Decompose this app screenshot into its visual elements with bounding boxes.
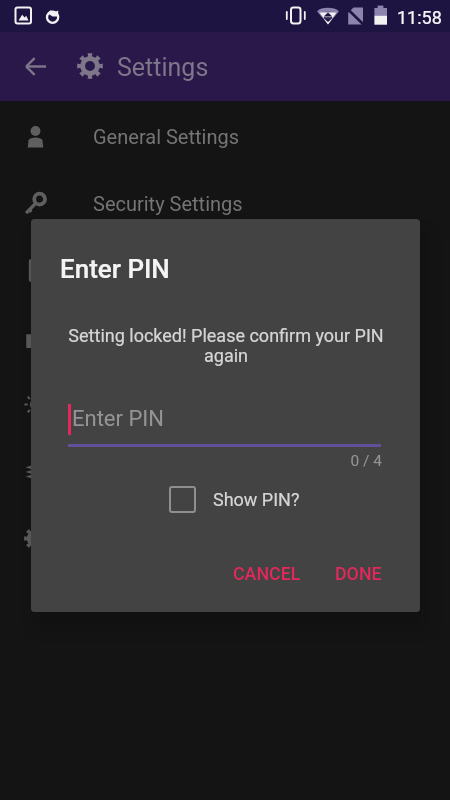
staticText: Security Settings: [93, 192, 243, 215]
button[interactable]: General Settings: [0, 103, 450, 170]
button[interactable]: Display Settings: [0, 371, 450, 438]
staticText: Enter PIN: [72, 406, 164, 432]
staticText: Show PIN?: [213, 489, 300, 510]
staticText: 11:58: [397, 7, 442, 28]
staticText: DONE: [335, 563, 382, 584]
button[interactable]: Show PIN?: [169, 486, 300, 513]
button[interactable]: Device Settings: [0, 237, 450, 304]
button[interactable]: Network Settings: [0, 304, 450, 371]
staticText: Device Settings: [93, 259, 231, 282]
button[interactable]: Back: [11, 32, 60, 101]
button[interactable]: DONE: [323, 554, 394, 593]
button[interactable]: Advanced Settings: [0, 505, 450, 572]
staticText: Network Settings: [93, 326, 246, 349]
button[interactable]: Security Settings: [0, 170, 450, 237]
staticText: Display Settings: [93, 393, 236, 416]
staticText: Enter PIN: [60, 254, 170, 284]
button[interactable]: Storage Settings: [0, 438, 450, 505]
staticText: Setting locked! Please confirm your PIN …: [68, 325, 384, 366]
staticText: Settings: [117, 53, 209, 82]
staticText: 0 / 4: [68, 452, 382, 470]
button[interactable]: CANCEL: [221, 554, 313, 593]
staticText: General Settings: [93, 125, 239, 148]
staticText: CANCEL: [233, 563, 301, 584]
